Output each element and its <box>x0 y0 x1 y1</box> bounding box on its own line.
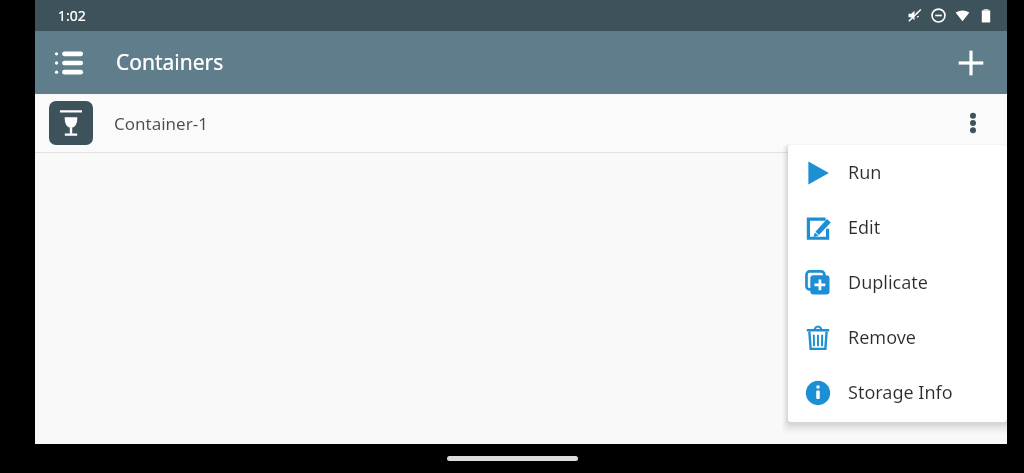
button[interactable]: Remove <box>788 310 1007 365</box>
button[interactable]: Add container <box>947 39 995 87</box>
staticText: Container-1 <box>114 112 208 135</box>
button[interactable]: Duplicate <box>788 255 1007 310</box>
staticText: Run <box>848 160 882 185</box>
button[interactable]: Container-1 <box>35 94 1007 152</box>
button[interactable]: Menu <box>45 39 93 87</box>
staticText: Remove <box>848 325 917 350</box>
staticText: Storage Info <box>848 380 953 405</box>
button[interactable]: Storage Info <box>788 365 1007 420</box>
button[interactable]: Edit <box>788 200 1007 255</box>
button[interactable]: More options <box>950 100 996 146</box>
button[interactable]: Run <box>788 145 1007 200</box>
staticText: 1:02 <box>58 6 86 25</box>
staticText: Duplicate <box>848 270 929 295</box>
staticText: Containers <box>116 48 224 77</box>
staticText: Edit <box>848 215 881 240</box>
